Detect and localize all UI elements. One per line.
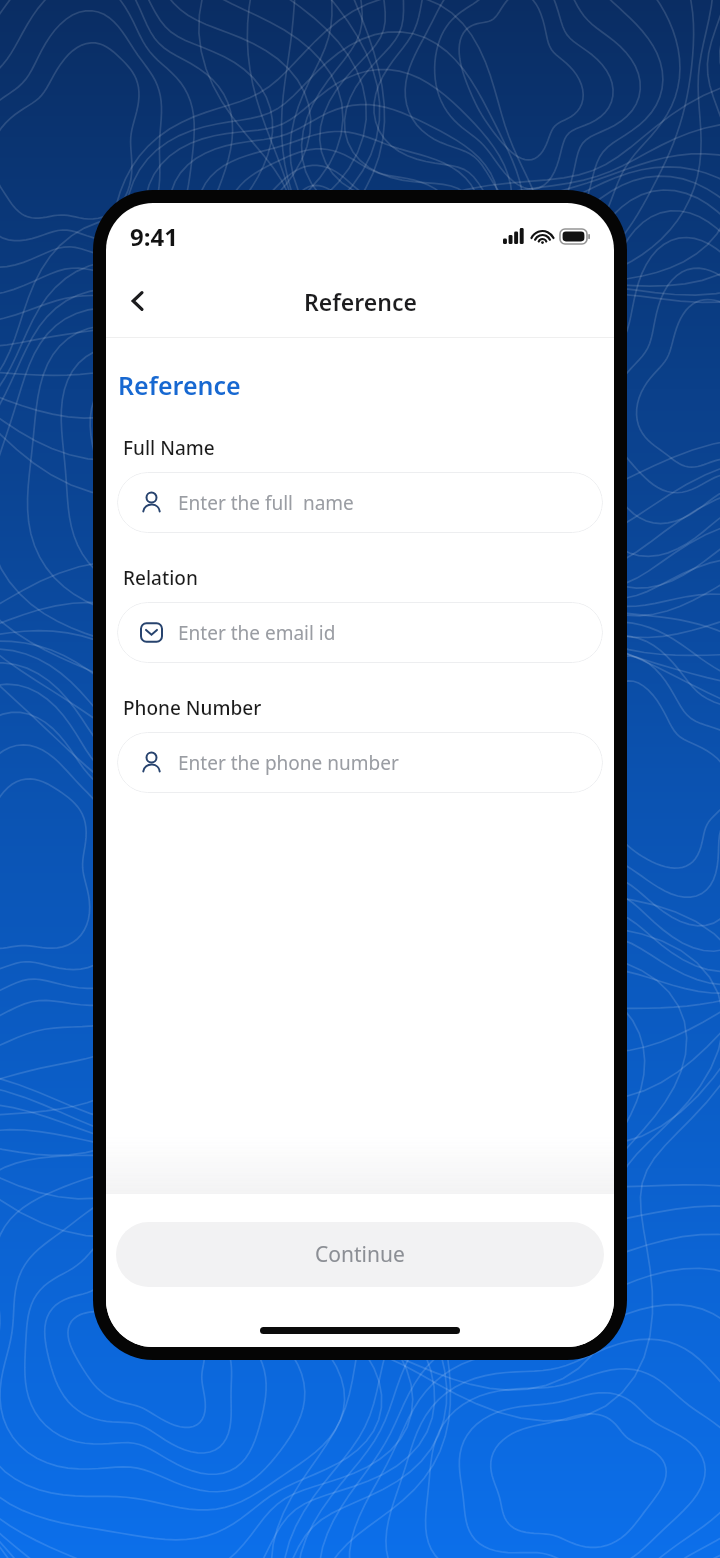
staticText: 9:41 [130, 220, 178, 253]
button[interactable]: Enter the phone number [117, 732, 603, 793]
staticText: Enter the full name [178, 490, 354, 516]
button[interactable]: Enter the full name [117, 472, 603, 533]
button[interactable]: Enter the email id [117, 602, 603, 663]
staticText: Reference [118, 368, 241, 402]
button[interactable]: Continue [116, 1222, 604, 1287]
staticText: Enter the phone number [178, 750, 399, 776]
staticText: Continue [315, 1240, 405, 1269]
staticText: Relation [123, 565, 198, 591]
button[interactable]: Back [116, 279, 160, 323]
staticText: Full Name [123, 435, 215, 461]
staticText: Enter the email id [178, 620, 336, 646]
staticText: Reference [304, 286, 417, 317]
staticText: Phone Number [123, 695, 262, 721]
